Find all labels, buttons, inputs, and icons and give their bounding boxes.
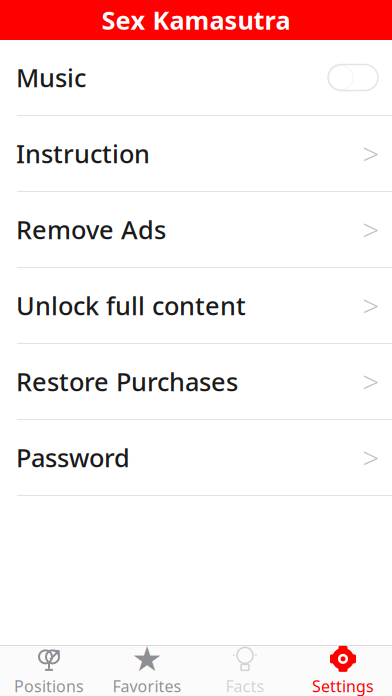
button[interactable]: · (196, 646, 294, 696)
button[interactable]: Password (0, 420, 392, 495)
button[interactable]: Settings (294, 646, 392, 696)
staticText: · (232, 646, 236, 664)
button[interactable]: Instruction (0, 116, 392, 191)
button[interactable]: ★ (98, 646, 196, 696)
staticText: > (362, 210, 379, 249)
staticText: > (362, 362, 379, 401)
staticText: ↗ (47, 645, 62, 665)
staticText: Favorites (112, 675, 181, 696)
staticText: Facts (225, 675, 264, 696)
staticText: > (362, 134, 379, 173)
button[interactable]: Music (0, 40, 392, 115)
staticText: Music (16, 61, 86, 94)
staticText: Settings (312, 675, 374, 696)
button[interactable]: Restore Purchases (0, 344, 392, 419)
staticText: Instruction (16, 137, 150, 170)
staticText: · (254, 646, 258, 664)
staticText: Unlock full content (16, 289, 246, 322)
button[interactable]: Unlock full content (0, 268, 392, 343)
staticText: Remove Ads (16, 213, 166, 246)
staticText: Sex Kamasutra (101, 3, 290, 37)
staticText: > (362, 438, 379, 477)
staticText: Password (16, 441, 130, 474)
button[interactable]: ↗ (0, 646, 98, 696)
staticText: Positions (14, 675, 84, 696)
staticText: > (362, 286, 379, 325)
staticText: ★ (131, 639, 162, 678)
button[interactable]: Remove Ads (0, 192, 392, 267)
staticText: Restore Purchases (16, 365, 238, 398)
